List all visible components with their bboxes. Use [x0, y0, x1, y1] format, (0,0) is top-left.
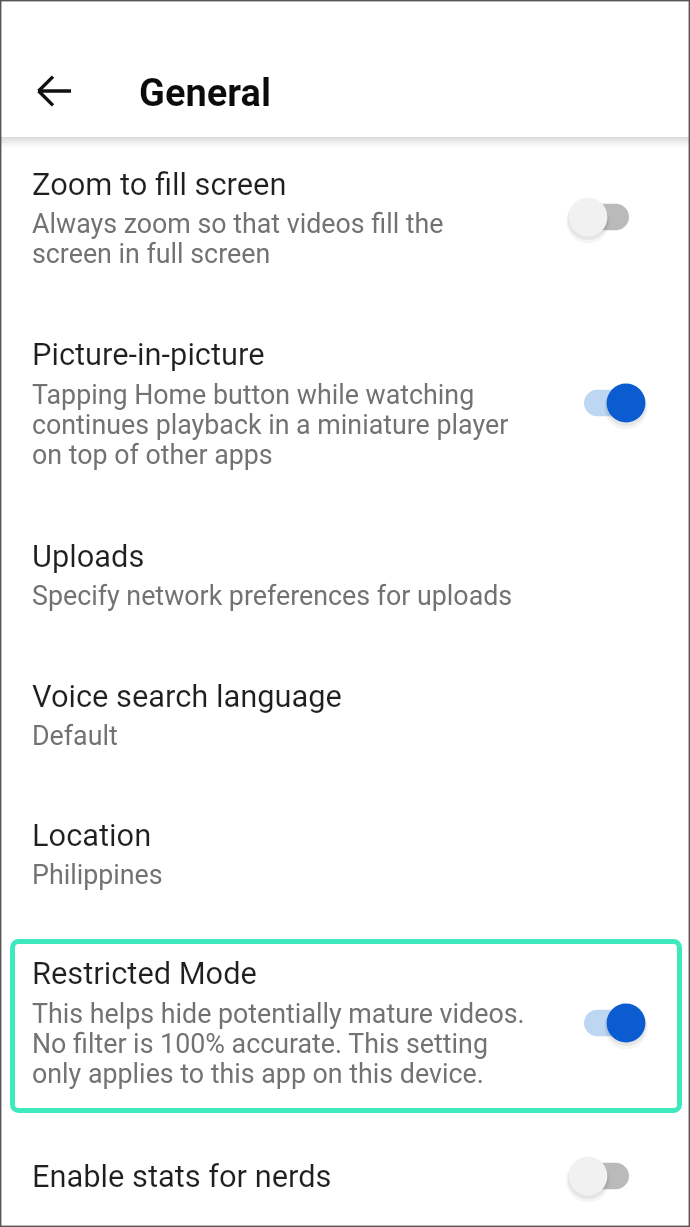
button[interactable]: [0, 1140, 690, 1220]
staticText: Restricted Mode: [32, 955, 525, 991]
staticText: Zoom to fill screen: [32, 166, 525, 202]
staticText: Tapping Home button while watching conti…: [32, 379, 525, 470]
button[interactable]: [0, 155, 690, 280]
button[interactable]: Enable stats for nerds: [556, 1140, 656, 1212]
staticText: This helps hide potentially mature video…: [32, 998, 525, 1089]
staticText: Default: [32, 720, 525, 751]
staticText: Voice search language: [32, 678, 525, 714]
staticText: General: [139, 71, 272, 116]
button[interactable]: [0, 800, 690, 895]
button[interactable]: [0, 666, 690, 761]
staticText: Enable stats for nerds: [32, 1158, 525, 1194]
button[interactable]: [0, 320, 690, 475]
staticText: Uploads: [32, 538, 525, 574]
staticText: Always zoom so that videos fill the scre…: [32, 208, 525, 269]
button[interactable]: Restricted Mode: [556, 987, 656, 1059]
button[interactable]: Picture-in-picture: [556, 367, 656, 439]
button[interactable]: [0, 525, 690, 620]
button[interactable]: Back: [28, 67, 80, 115]
button[interactable]: [10, 939, 682, 1113]
staticText: Location: [32, 817, 525, 853]
staticText: Philippines: [32, 859, 525, 890]
button[interactable]: Zoom to fill screen: [556, 181, 656, 253]
staticText: Specify network preferences for uploads: [32, 580, 525, 611]
staticText: Picture-in-picture: [32, 336, 525, 372]
